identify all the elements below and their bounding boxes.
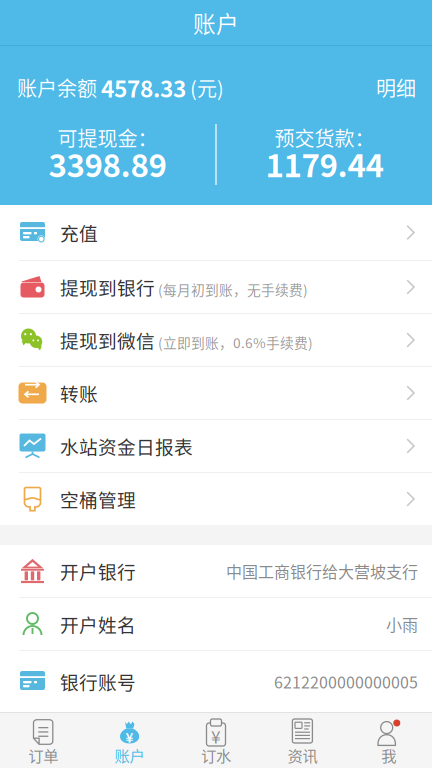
staticText: 空桶管理: [60, 485, 136, 512]
button[interactable]: 我: [346, 713, 432, 768]
staticText: 充值: [60, 219, 98, 246]
staticText: 提现到微信: [60, 326, 155, 353]
staticText: 预交货款：: [274, 123, 374, 152]
button[interactable]: 空桶管理: [0, 473, 432, 525]
staticText: 账户: [193, 6, 239, 39]
staticText: (元): [186, 73, 224, 102]
staticText: 1179.44: [265, 141, 383, 186]
staticText: 开户姓名: [60, 610, 136, 637]
staticText: 中国工商银行给大营坡支行: [226, 559, 418, 583]
button[interactable]: ¥: [86, 713, 173, 768]
staticText: 开户银行: [60, 557, 136, 584]
staticText: 转账: [60, 379, 98, 406]
staticText: 账户: [115, 744, 145, 766]
staticText: 3398.89: [48, 141, 166, 186]
button[interactable]: ¥: [173, 713, 259, 768]
staticText: 4578.33: [101, 71, 186, 104]
staticText: (立即到账，0.6%手续费): [158, 332, 313, 352]
staticText: 资讯: [287, 744, 317, 766]
staticText: 可提现金：: [57, 123, 157, 152]
staticText: 订水: [201, 744, 231, 766]
staticText: 我: [381, 744, 396, 766]
staticText: 水站资金日报表: [60, 432, 193, 459]
button[interactable]: 提现到银行: [0, 261, 432, 313]
staticText: 提现到银行: [60, 273, 155, 300]
button[interactable]: 充值: [0, 205, 432, 260]
staticText: (每月初到账，无手续费): [158, 279, 308, 299]
staticText: ¥: [126, 727, 134, 747]
staticText: 小雨: [386, 612, 418, 636]
button[interactable]: 订单: [0, 713, 86, 768]
staticText: 账户余额: [17, 73, 101, 102]
staticText: 明细: [376, 73, 416, 102]
button[interactable]: 提现到微信: [0, 314, 432, 366]
button[interactable]: 转账: [0, 367, 432, 419]
button[interactable]: 资讯: [259, 713, 346, 768]
staticText: 6212200000000005: [274, 670, 418, 693]
button[interactable]: 明细: [376, 73, 416, 102]
staticText: 银行账号: [60, 668, 136, 695]
button[interactable]: 水站资金日报表: [0, 420, 432, 472]
button[interactable]: 账户: [0, 0, 432, 45]
staticText: 订单: [28, 744, 58, 766]
staticText: ¥: [211, 723, 221, 749]
